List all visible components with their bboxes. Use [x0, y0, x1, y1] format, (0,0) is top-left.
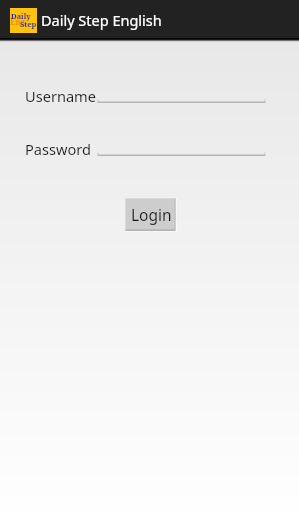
staticText: Step	[20, 19, 37, 29]
staticText: Password	[25, 139, 92, 159]
staticText: Username	[25, 86, 96, 106]
staticText: Login	[131, 204, 172, 225]
staticText: Daily	[11, 11, 31, 21]
staticText: Eng	[10, 16, 26, 27]
button[interactable]: Login	[125, 198, 177, 232]
staticText: Daily Step English	[41, 10, 162, 30]
button[interactable]: Daily Step logo, open navigation	[10, 8, 37, 33]
button[interactable]: Password	[97, 135, 266, 156]
button[interactable]: Username	[97, 82, 266, 103]
